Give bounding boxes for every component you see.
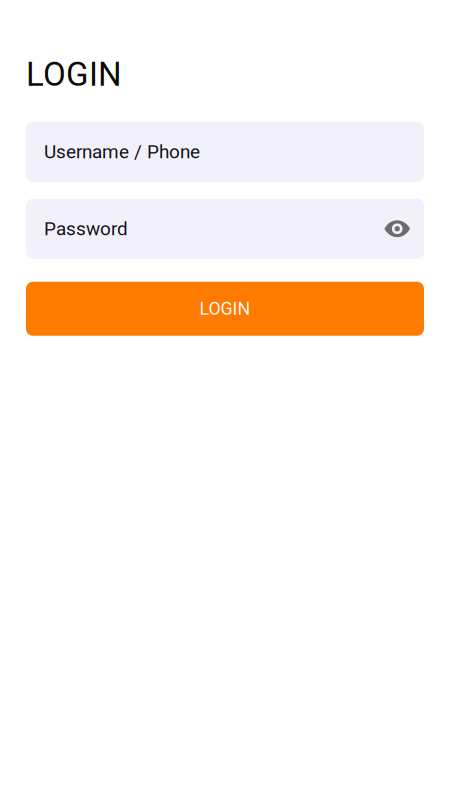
staticText: LOGIN xyxy=(26,55,122,94)
staticText: LOGIN xyxy=(199,298,250,319)
button[interactable]: Show password xyxy=(384,220,410,237)
staticText: Password xyxy=(44,218,128,240)
staticText: Username / Phone xyxy=(44,141,200,163)
button[interactable]: Username / Phone xyxy=(26,122,424,182)
button[interactable]: LOGIN xyxy=(26,282,424,336)
button[interactable]: Password xyxy=(26,199,424,259)
